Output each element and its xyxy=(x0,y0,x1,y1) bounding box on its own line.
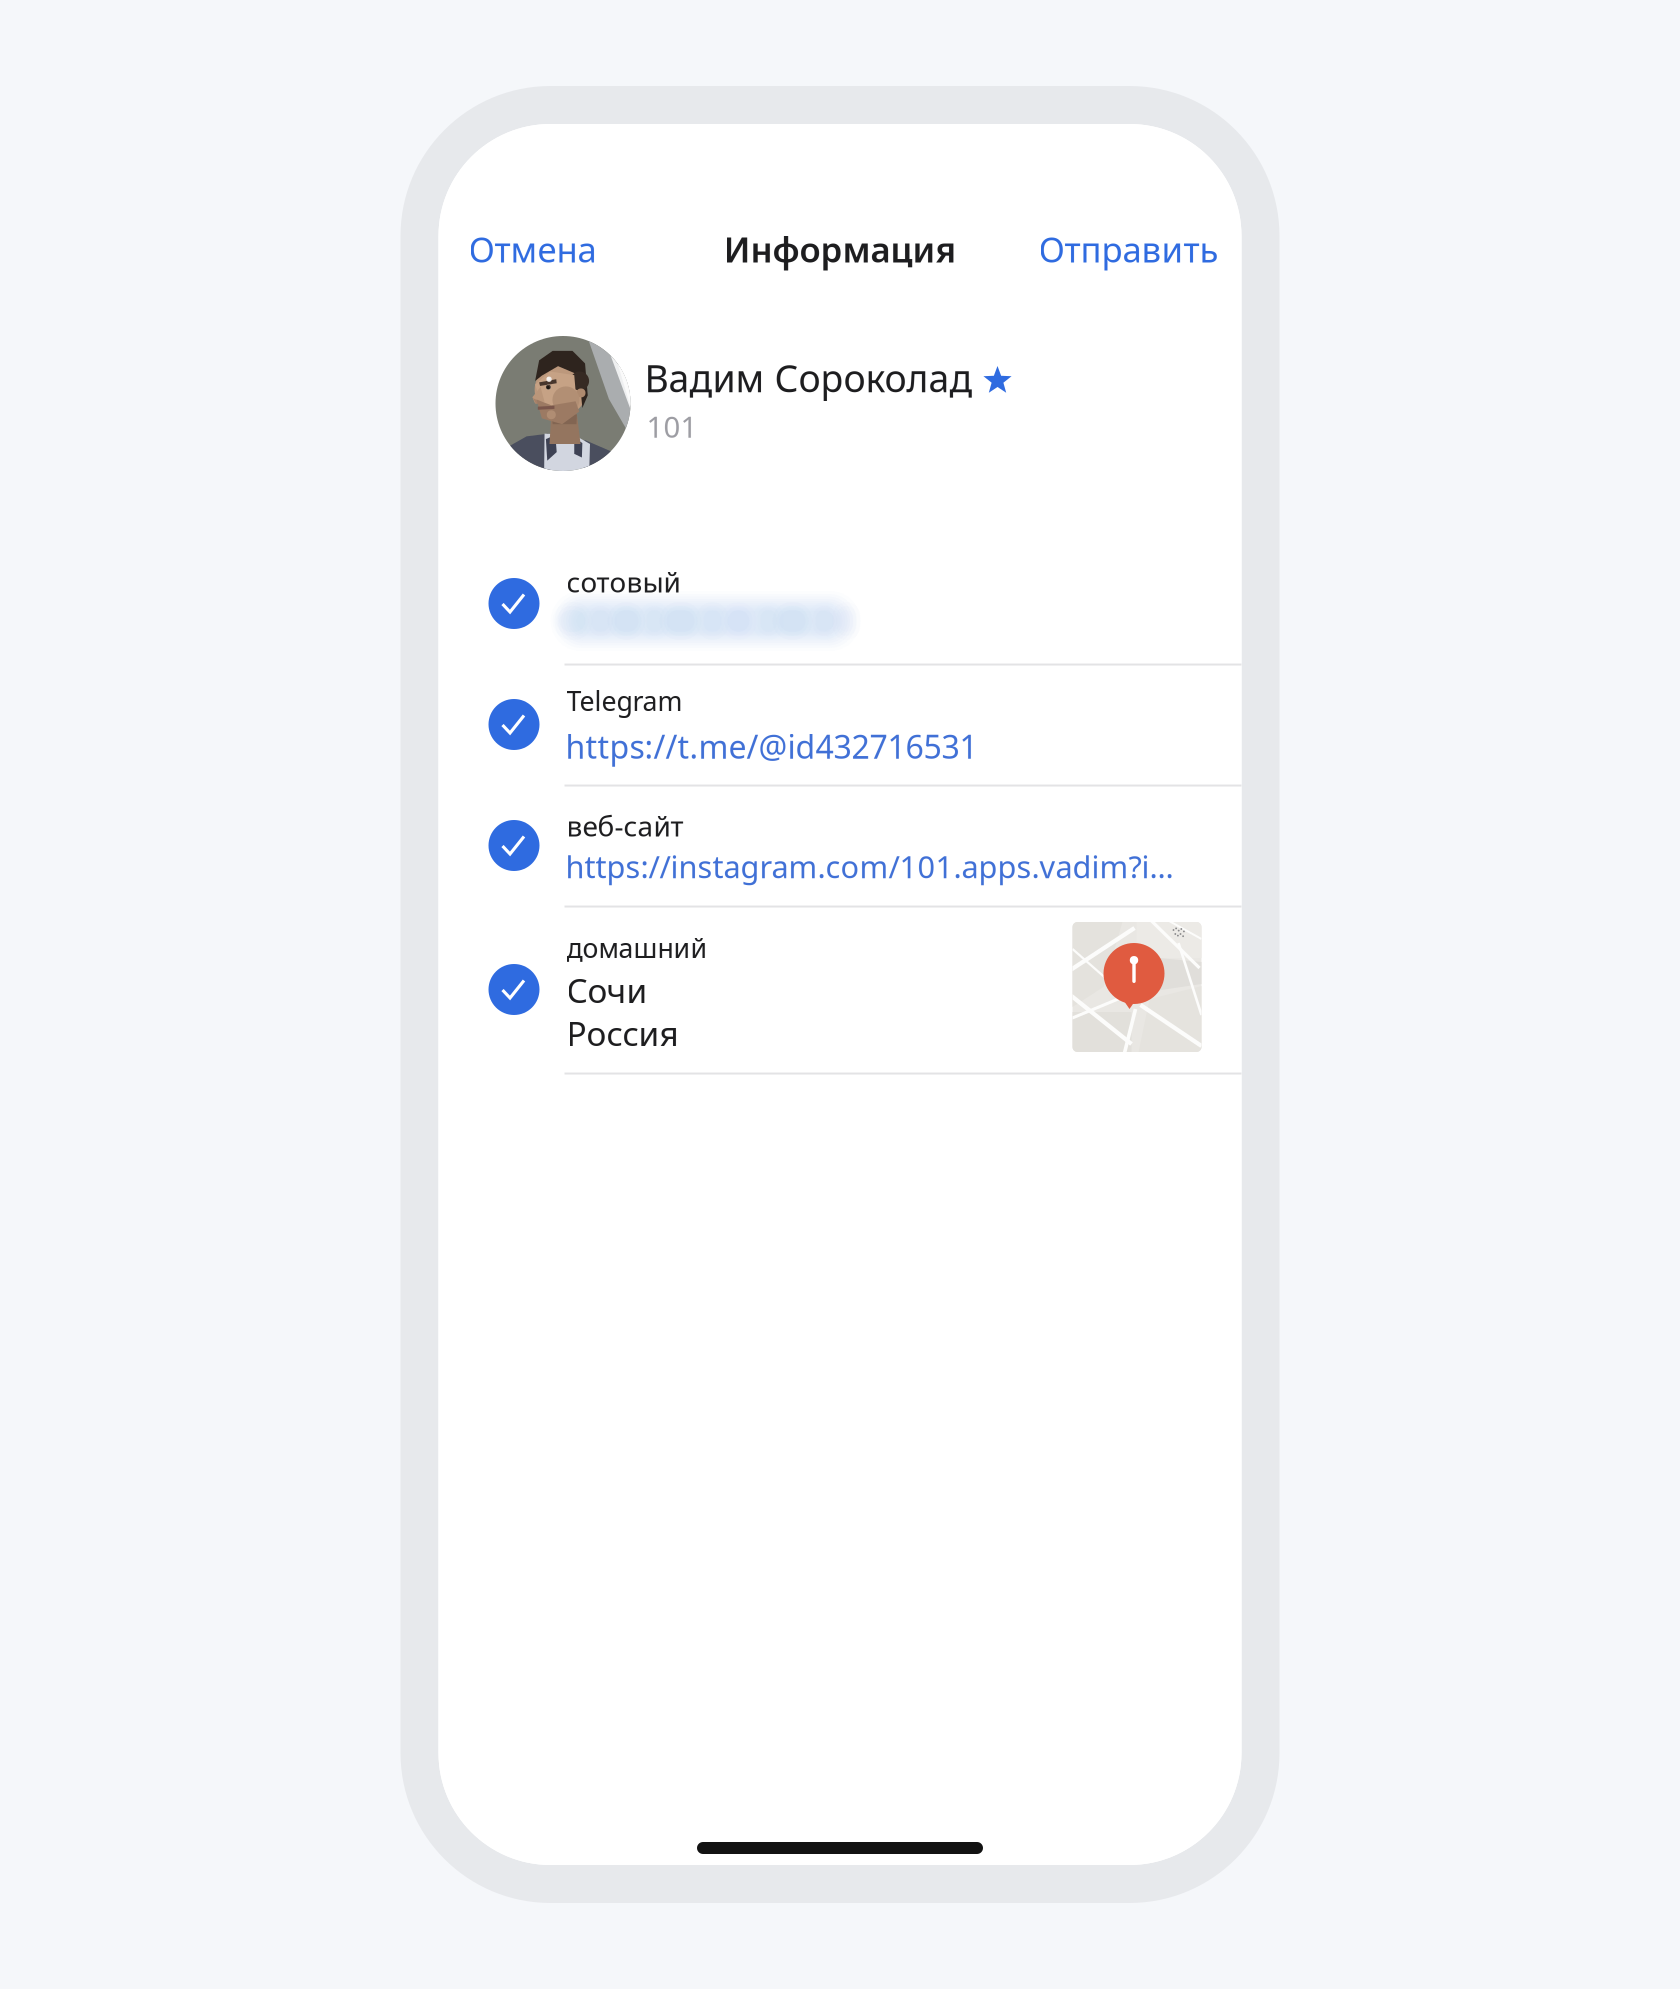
staticText: 101 xyxy=(646,407,697,446)
staticText: Telegram xyxy=(566,683,682,718)
staticText: веб-сайт xyxy=(566,807,683,844)
staticText: https://instagram.com/101.apps.vadim?i..… xyxy=(565,846,1173,887)
staticText: https://t.me/@id432716531 xyxy=(565,725,977,767)
button[interactable]: сотовый xyxy=(438,543,1241,664)
staticText: Сочи xyxy=(566,968,647,1012)
button[interactable]: Отправить xyxy=(1034,212,1218,286)
staticText: сотовый xyxy=(566,563,680,600)
button[interactable]: веб-сайт xyxy=(438,785,1241,906)
staticText: домашний xyxy=(566,930,707,965)
staticText: Отмена xyxy=(468,226,596,272)
staticText: Отправить xyxy=(1038,226,1218,272)
button[interactable]: Telegram xyxy=(438,664,1241,785)
staticText: Вадим Сороколад xyxy=(644,353,972,403)
button[interactable]: Отмена xyxy=(464,212,600,286)
button[interactable]: домашний xyxy=(438,906,1241,1073)
staticText: Информация xyxy=(723,226,956,272)
staticText: Россия xyxy=(566,1011,678,1055)
